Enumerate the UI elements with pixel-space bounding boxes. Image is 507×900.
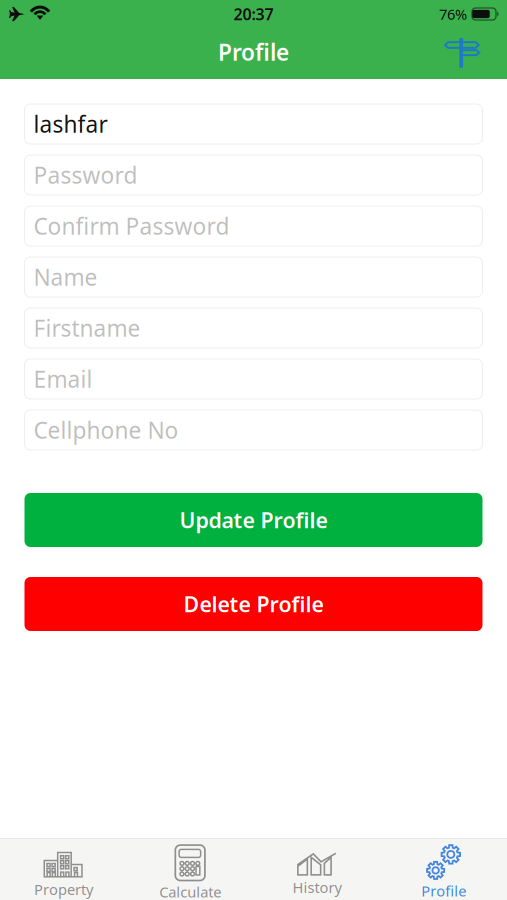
staticText: 76% (439, 4, 467, 24)
button[interactable]: History (253, 839, 380, 900)
button[interactable]: Password (24, 155, 482, 195)
staticText: Property (34, 880, 93, 899)
staticText: Name (33, 262, 97, 292)
button[interactable]: Profile (380, 839, 507, 900)
staticText: Password (33, 160, 137, 190)
staticText: lashfar (33, 109, 107, 139)
staticText: Cellphone No (33, 415, 178, 445)
staticText: Delete Profile (183, 590, 323, 618)
button[interactable]: Email (24, 359, 482, 399)
button[interactable]: Property (0, 839, 127, 900)
button[interactable]: Confirm Password (24, 206, 482, 246)
staticText: Update Profile (179, 506, 327, 534)
button[interactable]: Calculate (127, 839, 254, 900)
staticText: Profile (218, 37, 289, 67)
staticText: History (292, 878, 341, 897)
button[interactable]: Update Profile (24, 493, 482, 547)
staticText: Email (33, 364, 92, 394)
button[interactable]: Delete Profile (24, 577, 482, 631)
button[interactable]: lashfar (24, 104, 482, 144)
staticText: 20:37 (233, 3, 273, 25)
staticText: Profile (421, 881, 466, 900)
button[interactable]: Name (24, 257, 482, 297)
staticText: Confirm Password (33, 211, 229, 241)
staticText: Firstname (33, 313, 140, 343)
button[interactable]: Firstname (24, 308, 482, 348)
button[interactable]: Directions (440, 35, 484, 71)
staticText: Calculate (159, 882, 221, 900)
button[interactable]: Cellphone No (24, 410, 482, 450)
